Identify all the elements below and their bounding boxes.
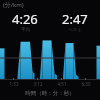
staticText: 3:12 — [30, 81, 46, 87]
button[interactable]: 4:26 — [0, 10, 50, 34]
staticText: 4:26 — [12, 10, 38, 28]
staticText: ベスト — [68, 27, 82, 33]
staticText: 1:33 — [6, 81, 22, 87]
staticText: (分/km) — [3, 1, 24, 9]
other: Pace chart — [0, 36, 100, 80]
button[interactable]: 2:47 — [50, 10, 100, 34]
staticText: 2:47 — [62, 10, 88, 28]
button[interactable]: Pace chart — [0, 36, 100, 80]
staticText: 4:51 — [54, 81, 70, 87]
staticText: 平均 — [21, 27, 30, 33]
staticText: 6:30 — [78, 81, 94, 87]
staticText: 時間（時：分：秒） — [0, 90, 100, 97]
